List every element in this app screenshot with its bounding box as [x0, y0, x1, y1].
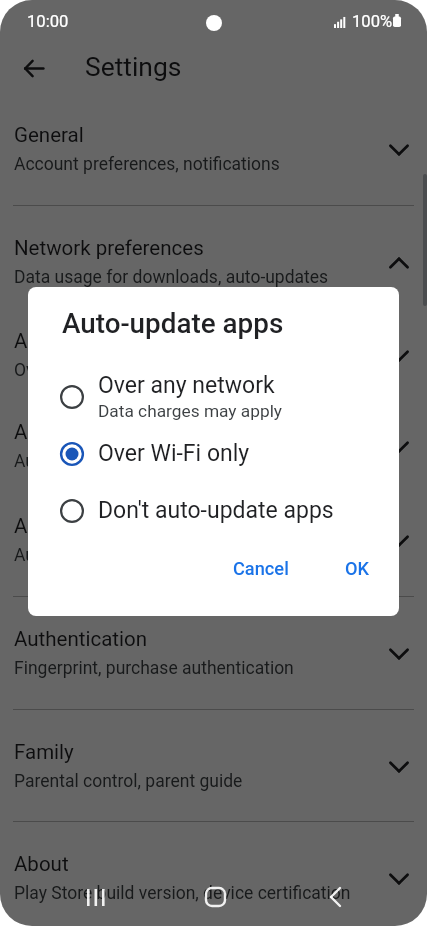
staticText: Don't auto-update apps	[98, 497, 334, 524]
button[interactable]: Recent apps	[56, 873, 136, 921]
staticText: Fingerprint, purchase authentication	[14, 658, 294, 679]
button[interactable]: Family	[0, 710, 427, 822]
staticText: Account preferences, notifications	[14, 154, 280, 175]
button[interactable]: Over Wi-Fi only	[28, 425, 399, 482]
staticText: Parental control, parent guide	[14, 771, 243, 792]
staticText: OK	[345, 558, 370, 579]
staticText: Cancel	[233, 558, 289, 579]
staticText: Auto-update apps	[14, 420, 176, 444]
staticText: Network preferences	[14, 236, 204, 260]
staticText: About	[14, 852, 69, 876]
button[interactable]: General	[0, 93, 427, 206]
staticText: Data charges may apply	[98, 401, 283, 421]
staticText: 100%	[352, 12, 393, 31]
button[interactable]: Don't auto-update apps	[28, 482, 399, 539]
button[interactable]: Home	[175, 873, 255, 921]
button[interactable]: OK	[337, 552, 378, 585]
staticText: General	[14, 123, 84, 147]
button[interactable]: Auto-play videos	[0, 484, 427, 597]
staticText: Play Store build version, device certifi…	[14, 883, 351, 904]
button[interactable]: App download preference	[0, 299, 427, 390]
staticText: Over any network	[98, 372, 275, 399]
staticText: Over any network	[14, 360, 149, 381]
staticText: Auto-update apps over Wi-Fi only	[14, 451, 269, 472]
button[interactable]: Over any network	[28, 368, 399, 425]
button[interactable]: About	[0, 822, 427, 915]
button[interactable]: Network preferences	[0, 206, 427, 299]
staticText: Auto-update apps	[62, 307, 284, 340]
button[interactable]: Back	[295, 873, 375, 921]
staticText: Authentication	[14, 627, 148, 651]
staticText: Auto-play videos over Wi-Fi only	[14, 545, 260, 566]
staticText: Family	[14, 740, 74, 764]
button[interactable]: Authentication	[0, 597, 427, 710]
staticText: Over Wi-Fi only	[98, 440, 250, 467]
staticText: Settings	[85, 52, 182, 83]
staticText: Auto-play videos	[14, 514, 165, 538]
staticText: App download preference	[14, 329, 248, 353]
staticText: Data usage for downloads, auto-updates	[14, 267, 329, 288]
staticText: 10:00	[27, 12, 69, 31]
button[interactable]: Auto-update apps	[0, 390, 427, 484]
button[interactable]: Navigate up	[14, 48, 54, 88]
button[interactable]: Cancel	[225, 552, 297, 585]
